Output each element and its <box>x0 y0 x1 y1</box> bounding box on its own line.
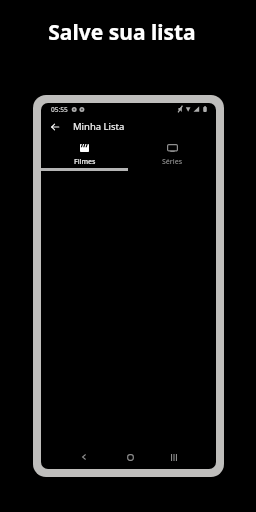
staticText: Filmes <box>74 157 96 167</box>
staticText: 05:55 <box>51 105 68 114</box>
button[interactable]: Recents <box>164 447 184 467</box>
button[interactable]: Séries <box>128 140 216 168</box>
staticText: Séries <box>162 157 183 167</box>
button[interactable]: Filmes <box>41 140 128 168</box>
button[interactable]: Home <box>120 447 140 467</box>
staticText: Salve sua lista <box>0 18 250 47</box>
staticText: Minha Lista <box>73 120 125 133</box>
button[interactable]: Voltar <box>47 119 63 135</box>
button[interactable]: Back <box>74 447 94 467</box>
